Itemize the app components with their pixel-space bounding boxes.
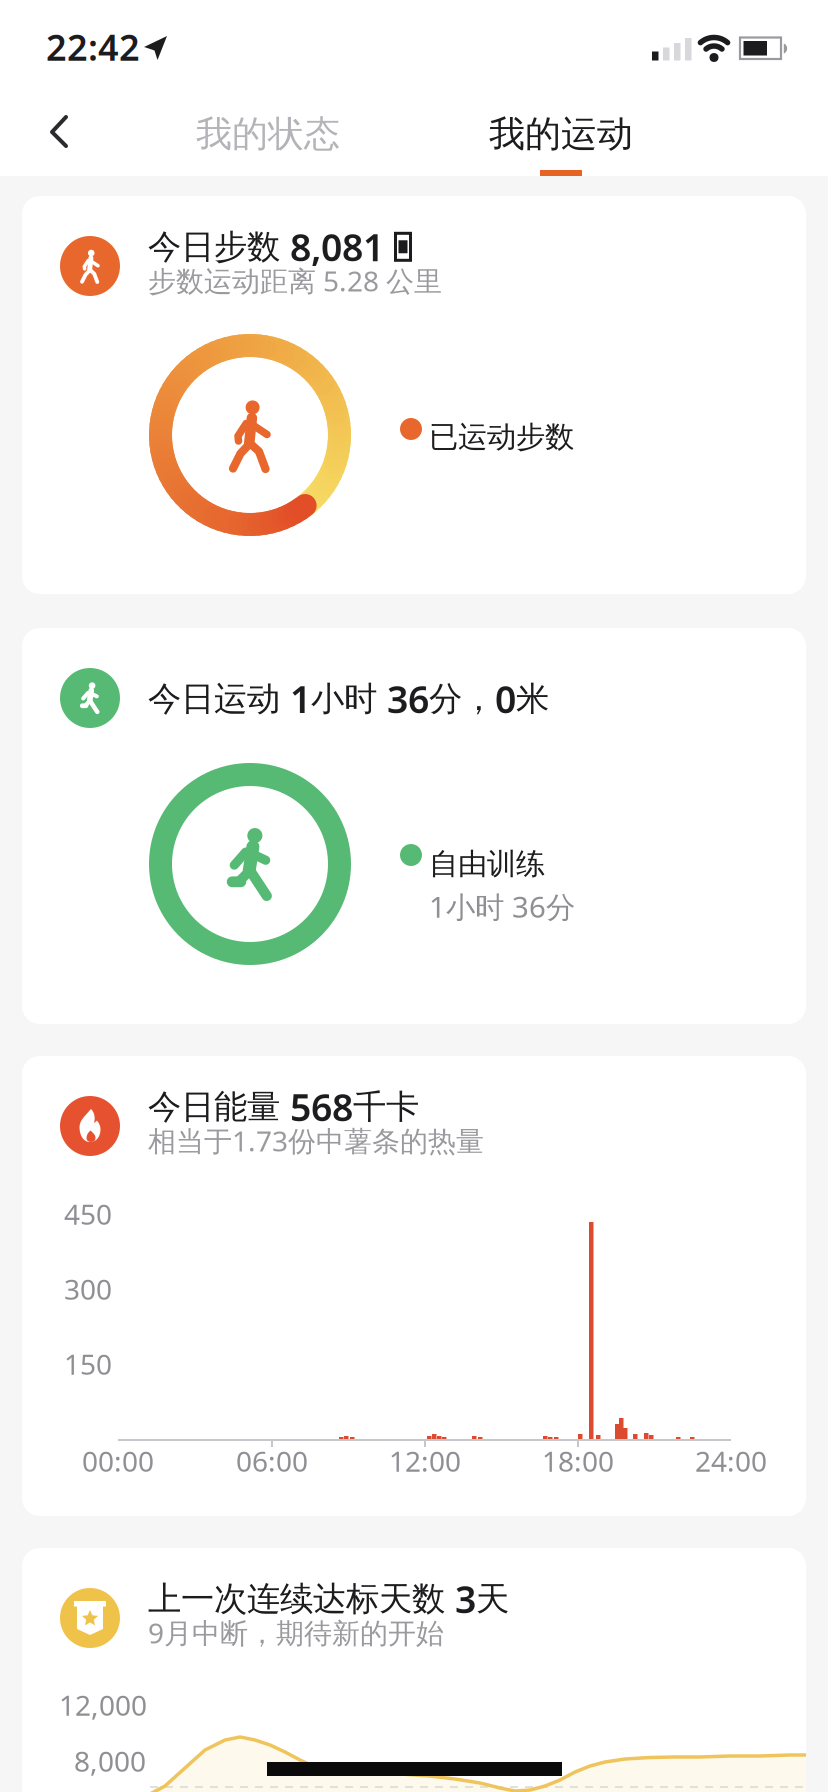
staticText: 36 <box>387 674 429 724</box>
staticText: 0 <box>495 674 516 724</box>
button[interactable]: 我的状态 <box>196 112 340 156</box>
staticText: 8,000 <box>74 1742 146 1780</box>
staticText: 9月中断，期待新的开始 <box>148 1614 444 1651</box>
staticText: 相当于1.73份中薯条的热量 <box>148 1122 484 1159</box>
staticText: 1小时 36分 <box>429 887 575 926</box>
staticText: 22:42 <box>46 23 140 71</box>
staticText: 300 <box>64 1270 112 1308</box>
staticText: 12,000 <box>59 1686 147 1724</box>
staticText: 450 <box>64 1195 112 1233</box>
staticText: 3 <box>455 1574 476 1624</box>
staticText: 12:00 <box>389 1442 461 1480</box>
button[interactable]: 今日运动 <box>22 628 806 1024</box>
staticText: 150 <box>64 1345 112 1383</box>
staticText: 小时 <box>311 678 387 719</box>
staticText: 米 <box>516 678 549 719</box>
staticText: 00:00 <box>82 1442 154 1480</box>
staticText: 8,081 <box>290 222 384 272</box>
staticText: 568 <box>290 1082 353 1132</box>
staticText: 24:00 <box>695 1442 767 1480</box>
staticText: 自由训练 <box>429 846 545 882</box>
button[interactable]: 今日步数 <box>22 196 806 594</box>
staticText: 天 <box>476 1578 509 1619</box>
staticText: 步数运动距离 5.28 公里 <box>148 262 442 299</box>
button[interactable]: Back <box>0 88 90 176</box>
staticText: 1 <box>290 674 311 724</box>
staticText: 分， <box>429 678 495 719</box>
staticText: 18:00 <box>542 1442 614 1480</box>
staticText: 我的运动 <box>489 112 633 156</box>
button[interactable]: 上一次连续达标天数 <box>22 1548 806 1792</box>
staticText: 我的状态 <box>196 112 340 156</box>
button[interactable]: 今日能量 <box>22 1056 806 1516</box>
staticText: 今日能量 <box>148 1086 290 1127</box>
staticText: 今日运动 <box>148 678 290 719</box>
staticText: 千卡 <box>353 1086 419 1127</box>
button[interactable]: 我的运动 <box>489 112 633 156</box>
staticText: 已运动步数 <box>429 419 574 455</box>
staticText: 今日步数 <box>148 226 290 267</box>
staticText: 上一次连续达标天数 <box>148 1578 455 1619</box>
staticText: 06:00 <box>236 1442 308 1480</box>
